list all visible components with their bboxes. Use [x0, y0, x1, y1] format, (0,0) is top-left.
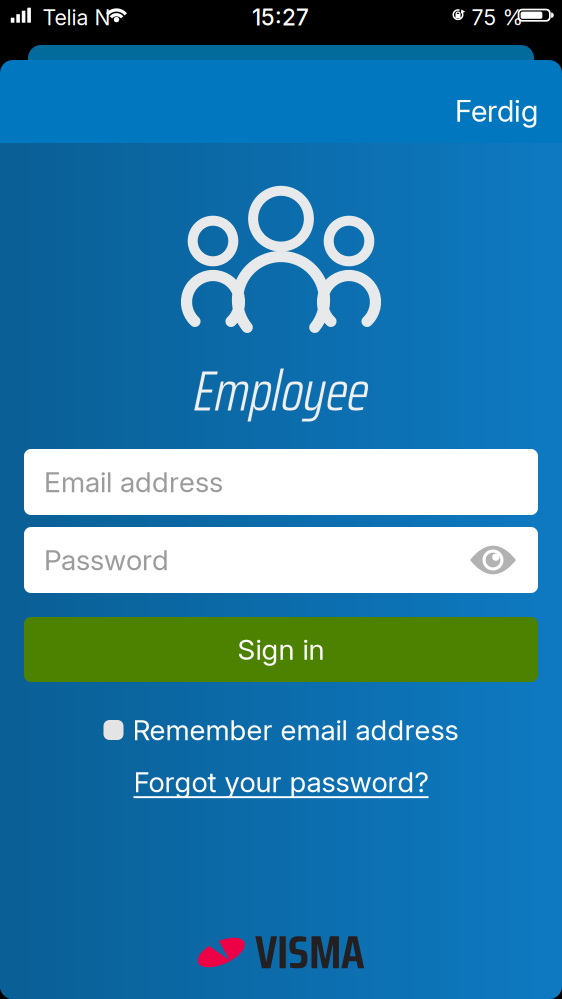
button[interactable]: Sign in	[24, 617, 538, 682]
staticText: Employee	[193, 347, 368, 435]
button[interactable]: Forgot your password?	[0, 762, 562, 802]
staticText: 15:27	[252, 3, 309, 31]
staticText: Ferdig	[455, 93, 538, 129]
staticText: Telia N	[42, 5, 110, 30]
staticText: Remember email address	[132, 713, 458, 747]
staticText: Password	[44, 543, 169, 577]
staticText: Email address	[44, 465, 223, 499]
staticText: VISMA	[255, 915, 365, 989]
button[interactable]: Show password	[470, 545, 516, 575]
staticText: Sign in	[237, 633, 324, 666]
staticText: Forgot your password?	[133, 765, 428, 799]
staticText: 75 %	[471, 5, 523, 30]
button[interactable]: Ferdig	[428, 89, 538, 133]
button[interactable]: Remember email address	[0, 710, 562, 750]
